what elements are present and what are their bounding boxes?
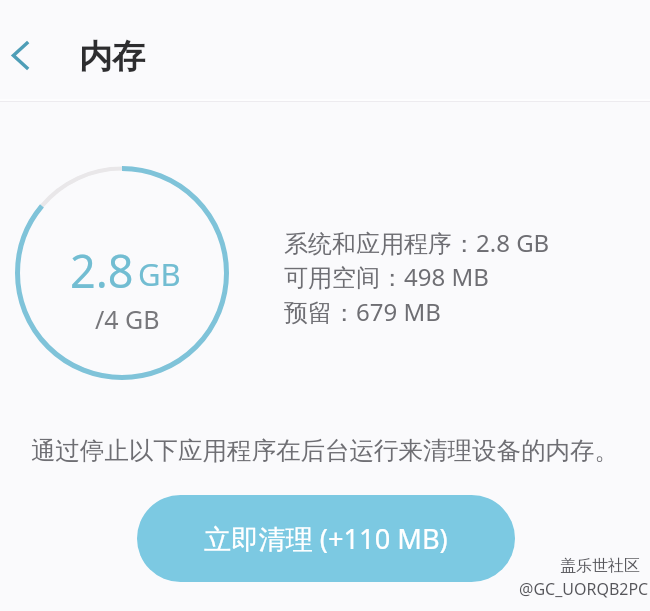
staticText: 可用空间：498 MB bbox=[284, 260, 489, 293]
staticText: 系统和应用程序：2.8 GB bbox=[284, 226, 550, 259]
button[interactable]: 立即清理 (+110 MB) bbox=[137, 495, 515, 582]
staticText: @GC_UORQB2PC bbox=[519, 578, 649, 600]
staticText: 立即清理 (+110 MB) bbox=[204, 520, 448, 557]
staticText: 内存 bbox=[79, 36, 145, 78]
staticText: /4 GB bbox=[95, 302, 160, 336]
staticText: 盖乐世社区 bbox=[560, 556, 640, 576]
staticText: GB bbox=[138, 253, 181, 295]
staticText: 预留：679 MB bbox=[284, 295, 441, 328]
staticText: 2.8 bbox=[70, 240, 134, 301]
button[interactable]: Back bbox=[0, 32, 46, 78]
staticText: 通过停止以下应用程序在后台运行来清理设备的内存。 bbox=[0, 435, 650, 466]
